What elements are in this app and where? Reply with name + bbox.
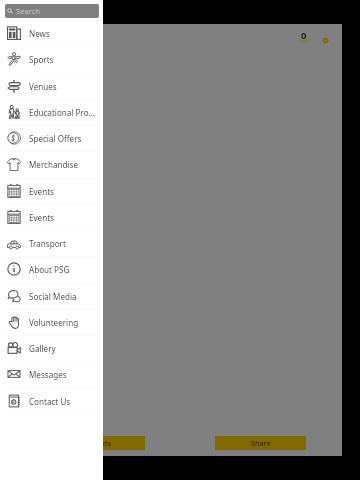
staticText: Messages xyxy=(29,369,67,380)
button[interactable]: About PSG xyxy=(0,256,103,282)
staticText: Volunteering xyxy=(29,317,79,328)
staticText: News xyxy=(29,28,50,39)
button[interactable]: Special Offers xyxy=(0,125,103,151)
staticText: Gallery xyxy=(29,343,56,354)
button[interactable]: Settings xyxy=(320,35,330,45)
staticText: Special Offers xyxy=(29,133,82,144)
button[interactable]: Contact Us xyxy=(0,388,103,414)
button[interactable]: Messages xyxy=(0,361,103,387)
button[interactable]: Social Media xyxy=(0,283,103,309)
staticText: Venues xyxy=(29,81,57,92)
button[interactable]: Venues xyxy=(0,73,103,99)
button[interactable]: Educational Pro... xyxy=(0,99,103,125)
staticText: Educational Pro... xyxy=(29,107,96,118)
staticText: Search xyxy=(16,6,41,16)
button[interactable]: Volunteering xyxy=(0,309,103,335)
staticText: Tickets xyxy=(87,438,112,448)
staticText: Events xyxy=(29,186,54,197)
button[interactable]: Transport xyxy=(0,230,103,256)
button[interactable]: News xyxy=(0,20,103,46)
button[interactable]: Gallery xyxy=(0,335,103,361)
button[interactable]: Sports xyxy=(0,46,103,72)
staticText: Merchandise xyxy=(29,159,79,170)
button[interactable]: Events xyxy=(0,204,103,230)
button[interactable]: Basket xyxy=(296,30,314,52)
staticText: Events xyxy=(29,212,54,223)
button[interactable]: Events xyxy=(0,178,103,204)
staticText: Transport xyxy=(29,238,66,249)
staticText: Sports xyxy=(29,54,54,65)
button[interactable]: Share xyxy=(215,436,306,450)
button[interactable]: Tickets xyxy=(53,436,145,450)
button[interactable]: Search xyxy=(5,4,99,18)
staticText: Social Media xyxy=(29,291,77,302)
staticText: Share xyxy=(251,438,271,448)
staticText: 0 xyxy=(301,29,307,42)
staticText: Contact Us xyxy=(29,396,71,407)
staticText: About PSG xyxy=(29,264,70,275)
button[interactable]: Merchandise xyxy=(0,151,103,177)
